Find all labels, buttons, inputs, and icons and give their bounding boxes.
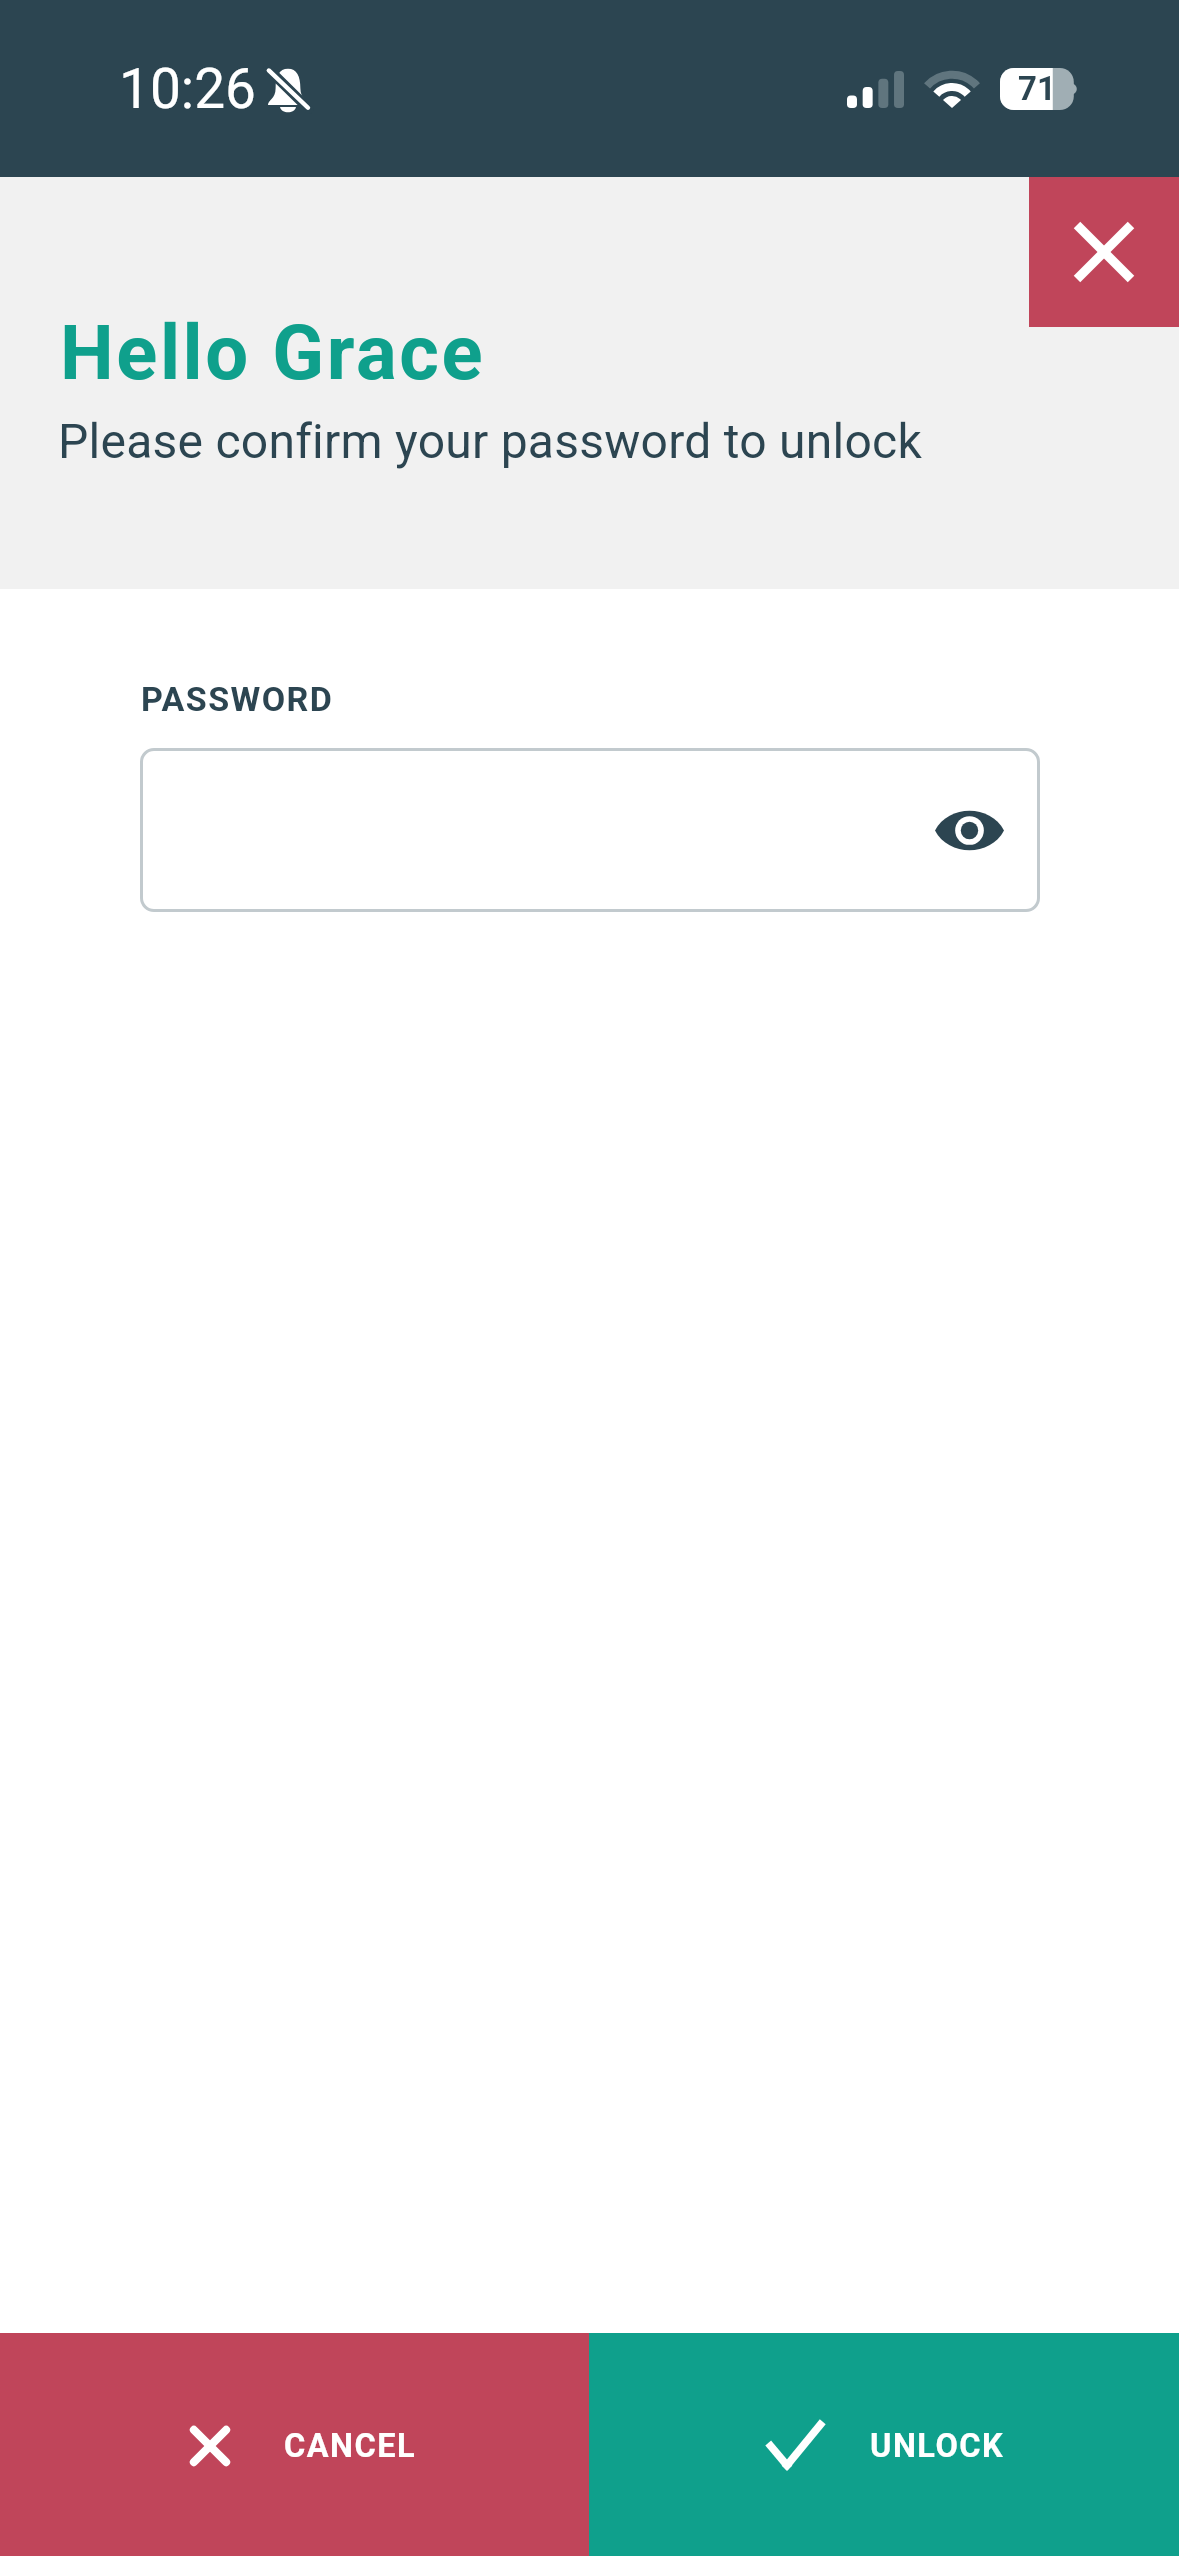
staticText: CANCEL [284,2427,417,2465]
button[interactable]: Show password [935,807,1004,854]
button[interactable]: CANCEL [0,2333,589,2556]
button[interactable]: UNLOCK [589,2333,1179,2556]
staticText: 10:26 [119,57,256,121]
staticText: 71 [1018,69,1056,108]
button[interactable]: Close [1029,177,1179,327]
staticText: Please confirm your password to unlock [58,413,922,469]
button[interactable]: Show password [140,748,1040,912]
staticText: UNLOCK [870,2427,1005,2465]
staticText: Hello Grace [60,308,486,397]
staticText: PASSWORD [141,679,334,719]
